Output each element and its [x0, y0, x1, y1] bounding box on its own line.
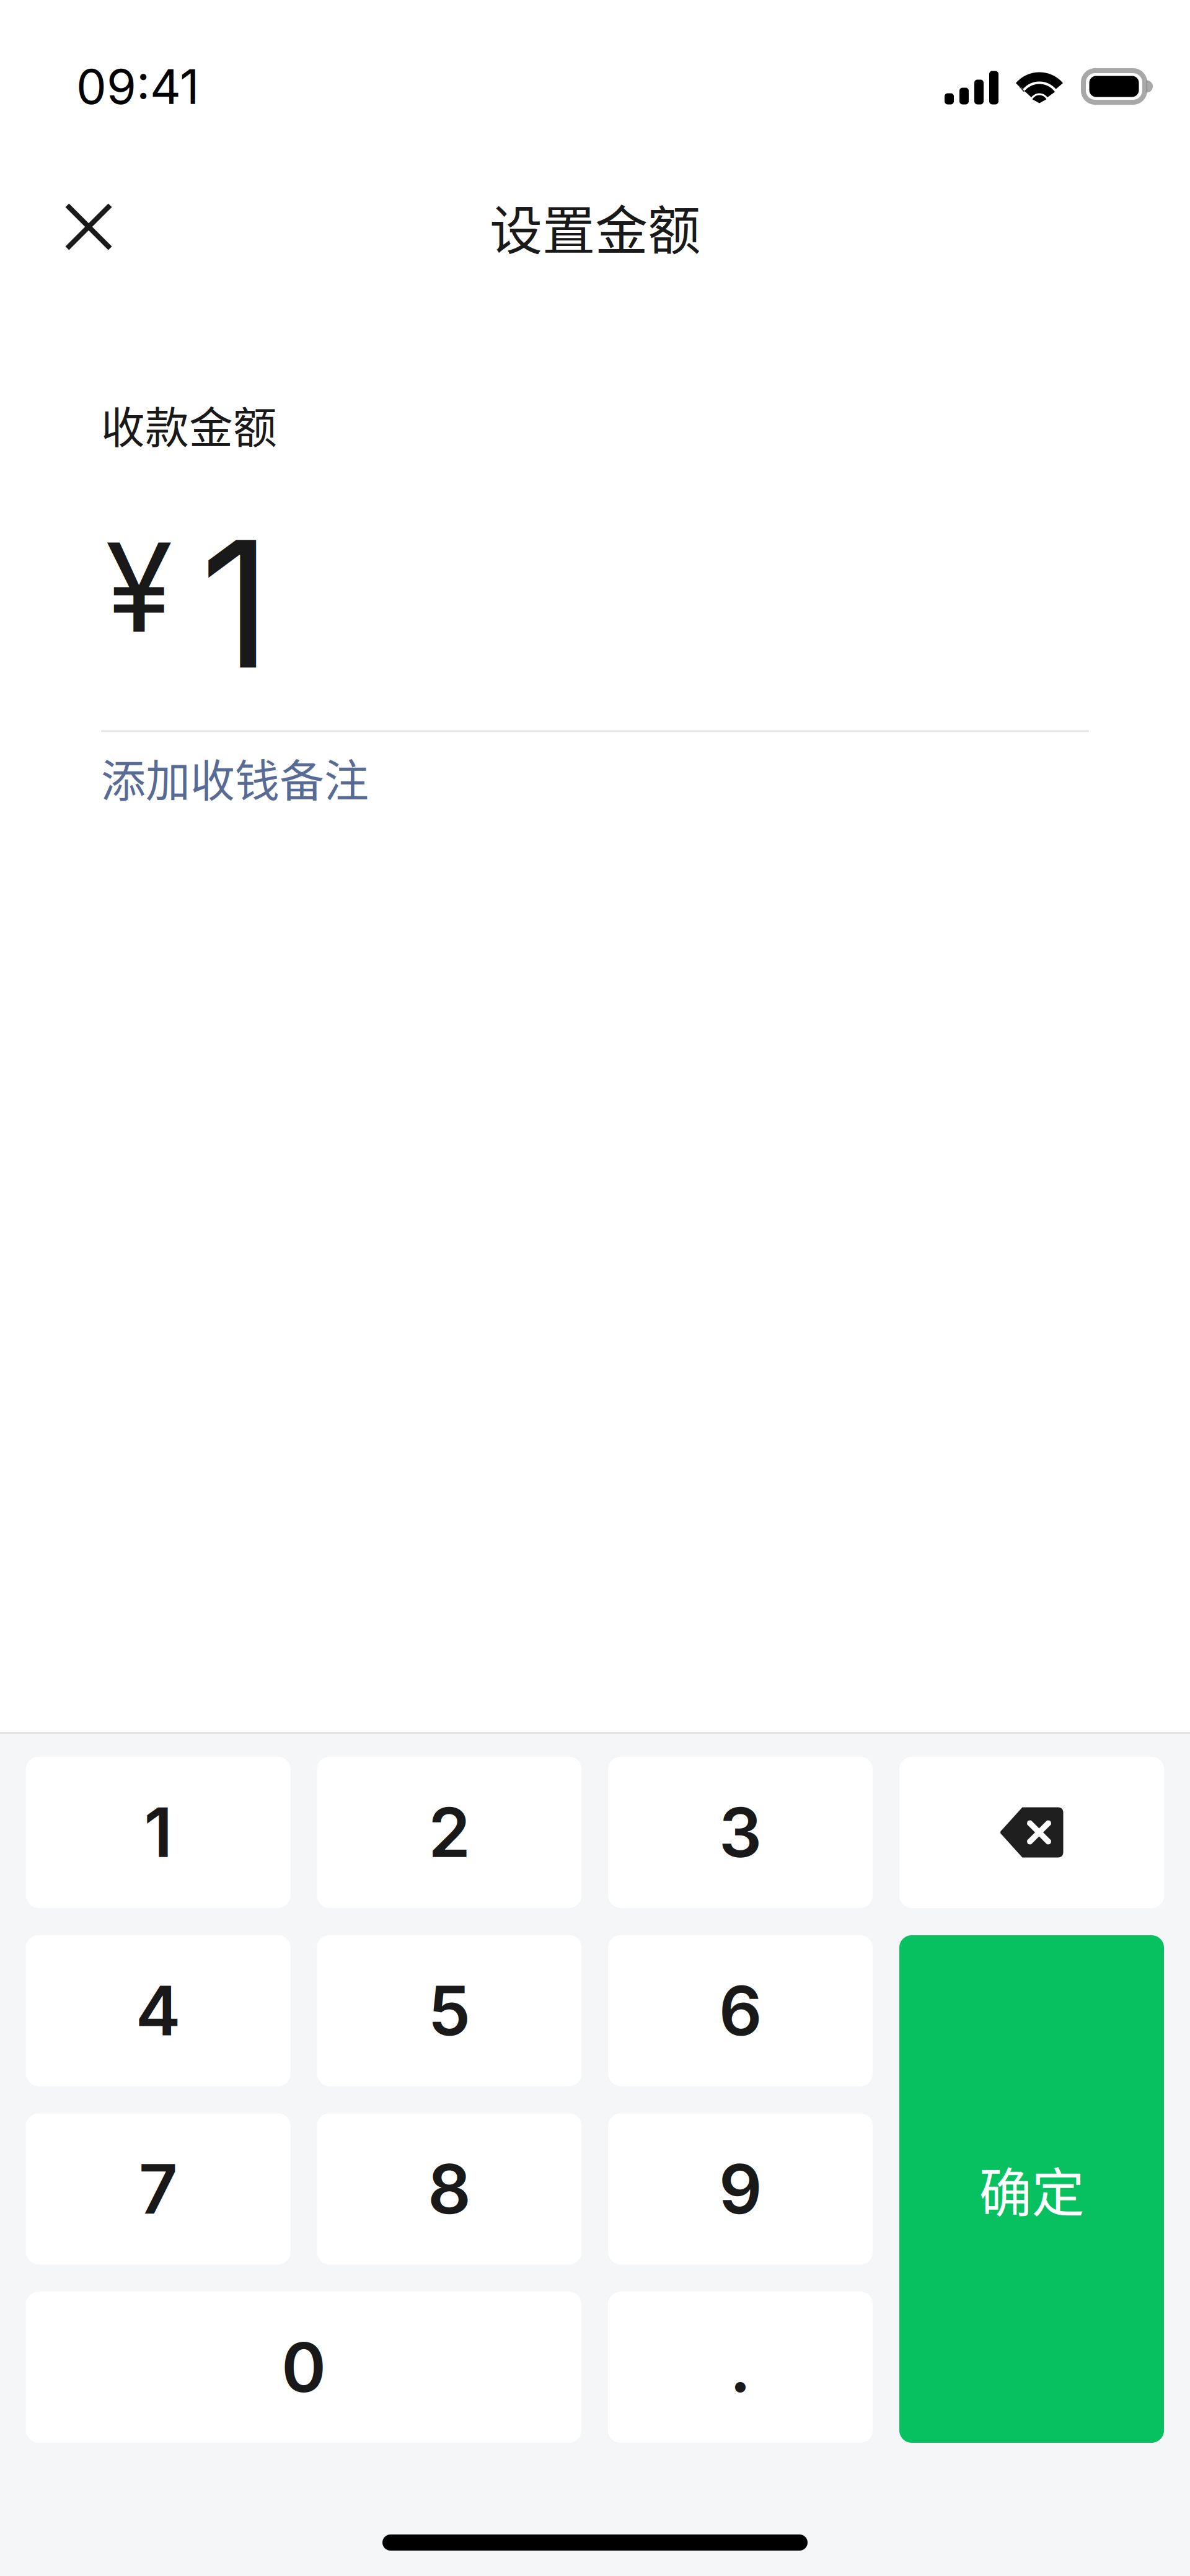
staticText: 2: [428, 1791, 470, 1873]
staticText: 添加收钱备注: [101, 745, 369, 810]
button[interactable]: 0: [26, 2292, 581, 2443]
button[interactable]: 2: [317, 1757, 582, 1908]
button[interactable]: 5: [317, 1935, 582, 2086]
staticText: .: [729, 2326, 751, 2408]
button[interactable]: 8: [317, 2113, 582, 2264]
button[interactable]: 删除: [899, 1757, 1164, 1908]
staticText: 9: [719, 2148, 762, 2230]
staticText: 0: [281, 2326, 326, 2408]
staticText: 3: [719, 1791, 762, 1873]
staticText: 8: [428, 2148, 471, 2230]
staticText: 收款金额: [101, 393, 277, 456]
staticText: 确定: [979, 2151, 1084, 2227]
staticText: 6: [719, 1970, 762, 2052]
staticText: 5: [428, 1970, 471, 2052]
button[interactable]: 1: [26, 1757, 290, 1908]
staticText: 设置金额: [490, 188, 700, 265]
button[interactable]: 关闭: [42, 188, 135, 265]
staticText: ¥: [105, 513, 172, 661]
staticText: 1: [200, 498, 271, 710]
button[interactable]: 4: [26, 1935, 290, 2086]
staticText: 1: [144, 1791, 172, 1873]
staticText: 7: [139, 2148, 178, 2230]
button[interactable]: 确定: [899, 1935, 1164, 2443]
button[interactable]: .: [608, 2292, 873, 2443]
button[interactable]: 添加收钱备注: [101, 745, 369, 810]
button[interactable]: 7: [26, 2113, 290, 2264]
button[interactable]: 9: [608, 2113, 873, 2264]
staticText: 4: [136, 1970, 181, 2052]
button[interactable]: 6: [608, 1935, 873, 2086]
button[interactable]: 3: [608, 1757, 873, 1908]
staticText: 09:41: [76, 57, 199, 115]
